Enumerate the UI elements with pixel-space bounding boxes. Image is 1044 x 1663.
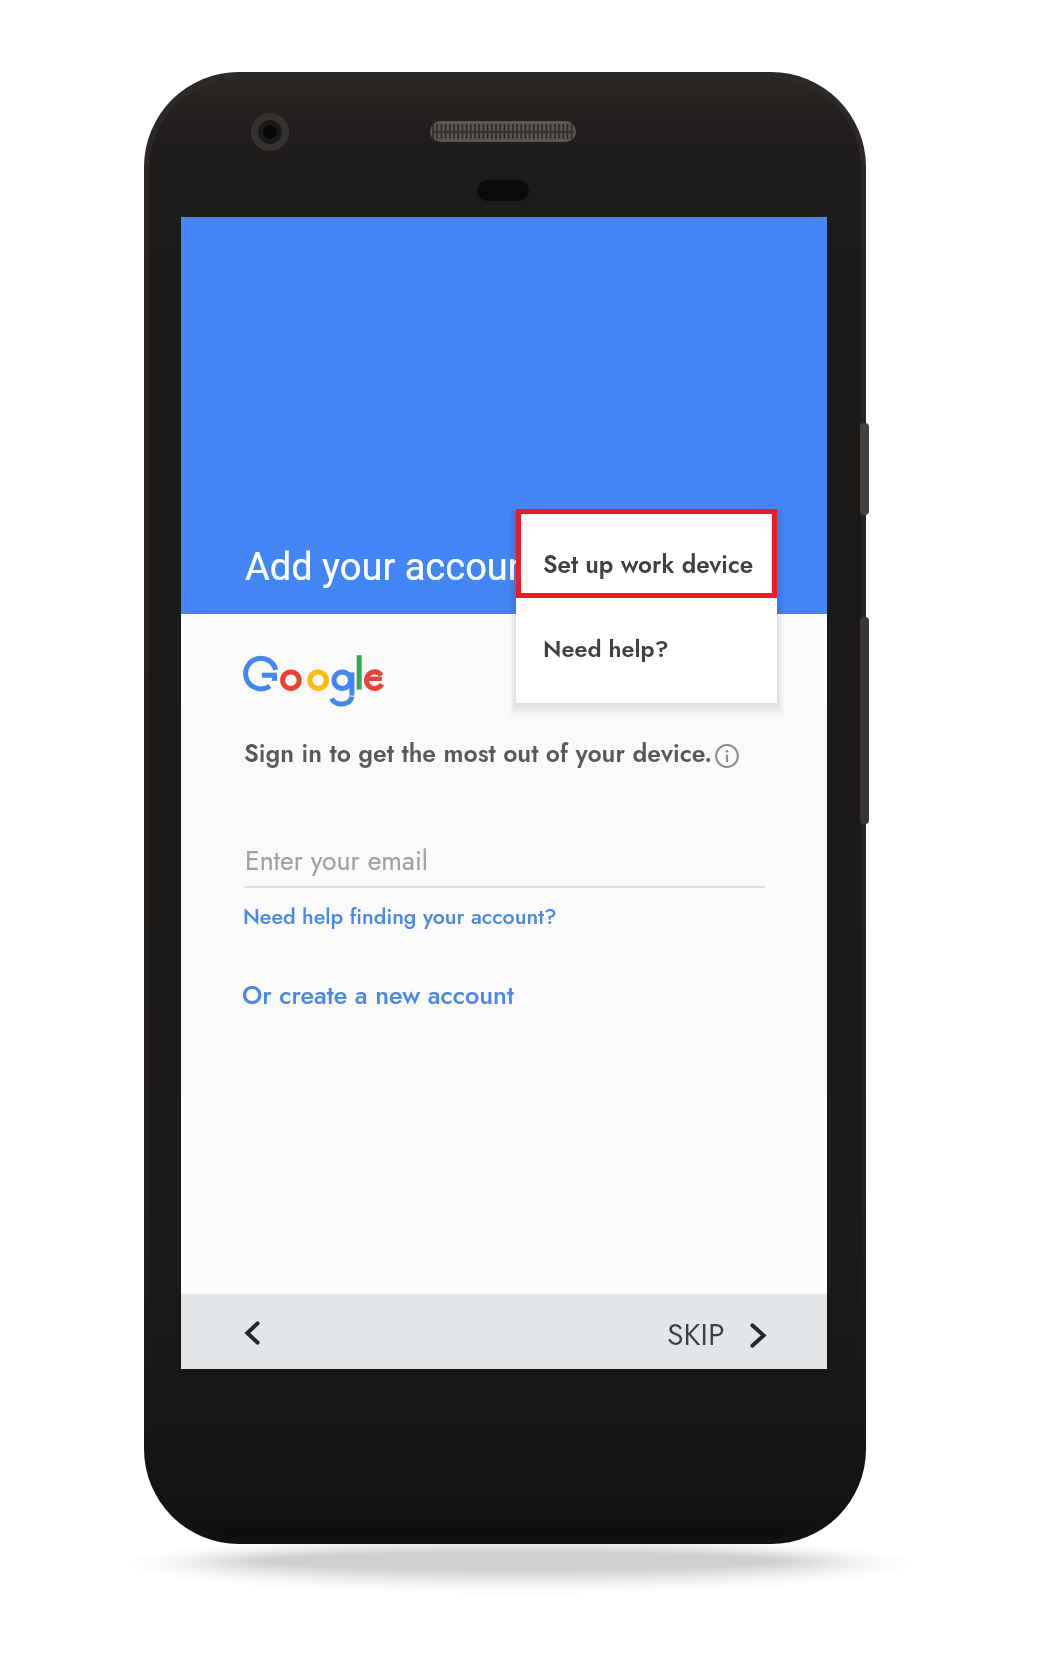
staticText: Sign in to get the most out of your devi… — [244, 736, 712, 772]
staticText: Or create a new account — [242, 977, 514, 1014]
staticText: Add your account — [245, 545, 542, 590]
button[interactable]: Need help? — [516, 598, 777, 703]
staticText: Enter your email — [245, 842, 428, 880]
staticText: Set up work device — [543, 547, 754, 582]
button[interactable]: SKIP — [667, 1313, 766, 1357]
staticText: Need help finding your account? — [243, 901, 557, 932]
button[interactable]: Or create a new account — [242, 977, 514, 1014]
button[interactable]: Need help finding your account? — [243, 901, 557, 932]
button[interactable]: Set up work device — [516, 509, 777, 598]
staticText: Need help? — [543, 632, 669, 666]
staticText: SKIP — [667, 1313, 725, 1357]
button[interactable]: Back — [245, 1321, 260, 1345]
button[interactable]: Enter your email — [244, 842, 765, 897]
button[interactable]: More information — [715, 744, 739, 768]
